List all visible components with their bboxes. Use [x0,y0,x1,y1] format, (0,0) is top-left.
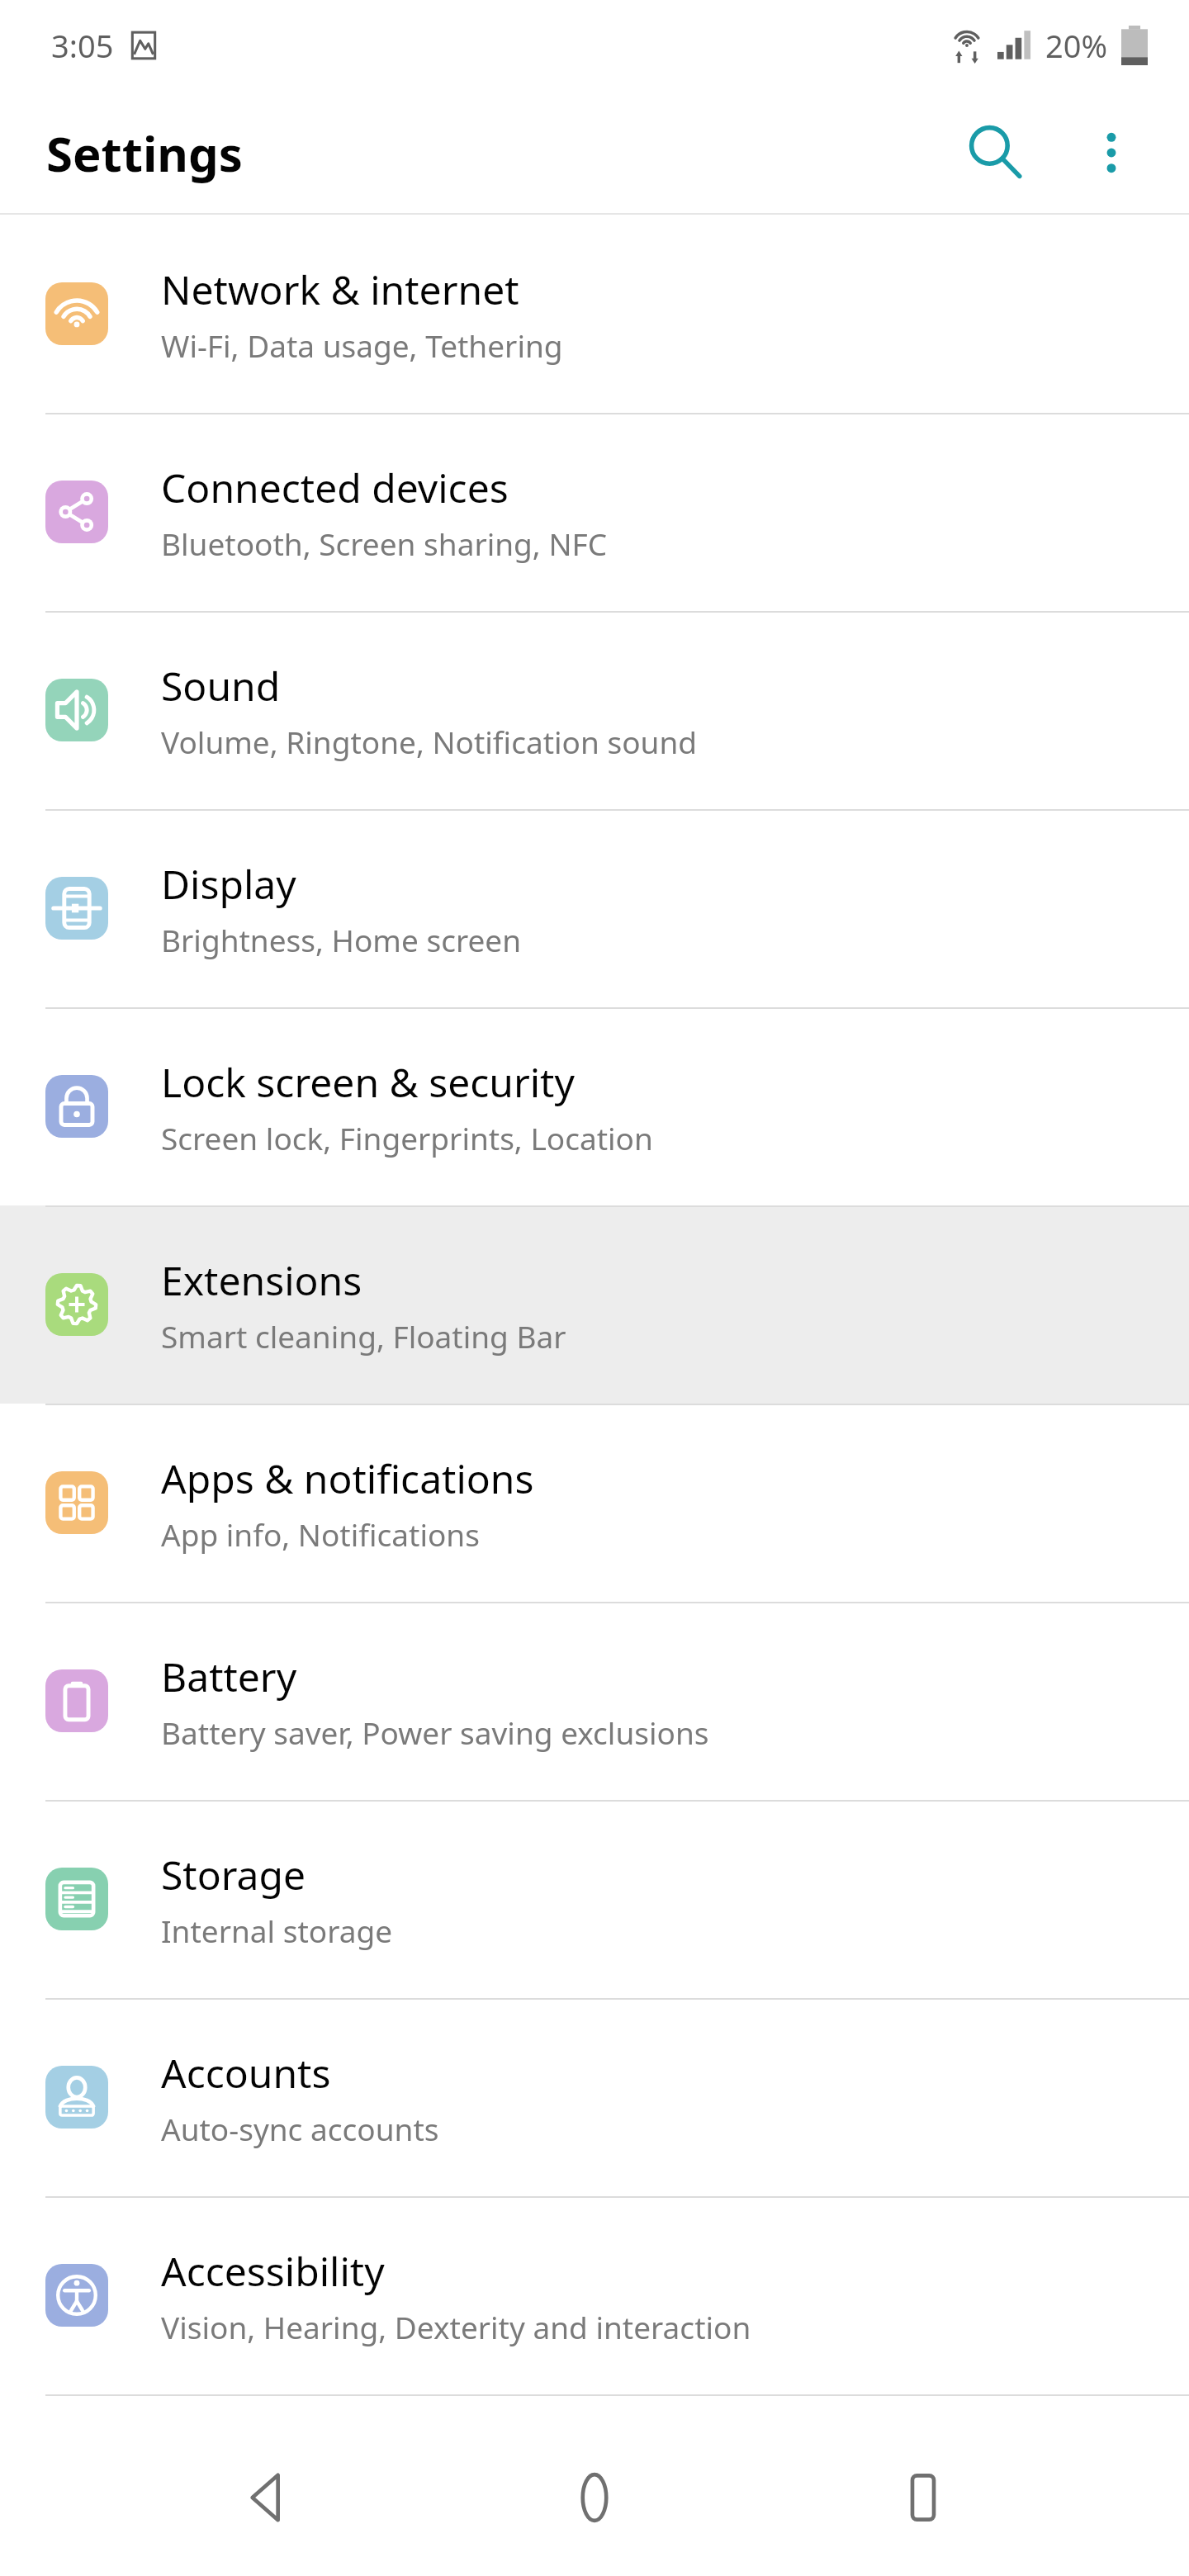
staticText: Connected devices [161,461,509,514]
staticText: Display [161,857,296,911]
staticText: Brightness, Home screen [161,919,522,960]
button[interactable]: Extensions [0,1205,1189,1404]
staticText: App info, Notifications [161,1513,480,1555]
button[interactable]: Back [205,2436,329,2559]
button[interactable]: Recents [861,2436,985,2559]
staticText: Volume, Ringtone, Notification sound [161,721,698,762]
staticText: Sound [161,659,281,713]
button[interactable]: Accounts [0,1998,1189,2196]
button[interactable]: Display [0,809,1189,1007]
button[interactable]: Lock screen & security [0,1007,1189,1205]
button[interactable]: Home [533,2436,656,2559]
staticText: Network & internet [161,263,519,316]
button[interactable]: Network & internet [0,215,1189,413]
staticText: Battery [161,1650,297,1703]
button[interactable]: More options [1070,111,1153,194]
staticText: Apps & notifications [161,1451,534,1505]
staticText: Accessibility [161,2244,385,2298]
staticText: Bluetooth, Screen sharing, NFC [161,523,608,564]
button[interactable]: Accessibility [0,2196,1189,2394]
button[interactable]: Sound [0,611,1189,809]
staticText: Lock screen & security [161,1055,575,1109]
staticText: Vision, Hearing, Dexterity and interacti… [161,2306,751,2347]
staticText: Screen lock, Fingerprints, Location [161,1117,653,1158]
staticText: Internal storage [161,1910,393,1951]
button[interactable]: Apps & notifications [0,1404,1189,1602]
staticText: 3:05 [51,24,114,67]
button[interactable]: Connected devices [0,413,1189,611]
staticText: Auto-sync accounts [161,2108,439,2149]
staticText: Wi-Fi, Data usage, Tethering [161,324,563,366]
staticText: Battery saver, Power saving exclusions [161,1712,709,1753]
button[interactable]: Search [950,107,1040,198]
staticText: Smart cleaning, Floating Bar [161,1315,566,1357]
staticText: Settings [46,121,243,186]
button[interactable]: Battery [0,1602,1189,1800]
staticText: Storage [161,1848,306,1901]
button[interactable]: Storage [0,1800,1189,1998]
staticText: 20% [1045,24,1108,67]
staticText: Extensions [161,1253,362,1307]
staticText: Accounts [161,2046,331,2100]
